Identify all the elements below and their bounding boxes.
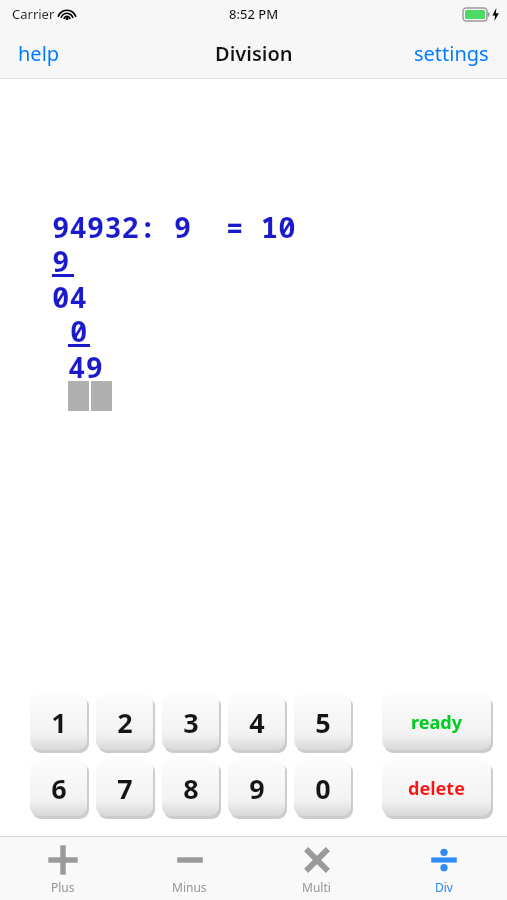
staticText: 6 [51,770,67,807]
button[interactable]: 4 [226,692,286,752]
staticText: 9 [249,770,265,807]
button[interactable]: ready [380,692,492,752]
button[interactable]: Minus [126,837,253,900]
staticText: 5 [315,704,331,741]
button[interactable]: 5 [292,692,352,752]
button[interactable]: delete [380,758,492,818]
button[interactable]: 6 [28,758,88,818]
staticText: 1 [51,704,67,741]
staticText: 2 [117,704,133,741]
button[interactable]: help [6,34,72,73]
staticText: 3 [183,704,199,741]
staticText: 8 [183,770,199,807]
staticText: 4 [249,704,265,741]
button[interactable]: 2 [94,692,154,752]
button[interactable]: 9 [226,758,286,818]
staticText: 94932: 9 = 10 [52,207,296,246]
staticText: 04 [52,277,87,316]
staticText: help [18,40,60,67]
staticText: 0 [315,770,331,807]
staticText: 9 [52,241,70,280]
staticText: Multi [302,879,331,895]
button[interactable]: 1 [28,692,88,752]
staticText: 8:52 PM [229,5,279,23]
staticText: Minus [172,879,207,895]
staticText: Carrier [12,5,55,23]
button[interactable]: 3 [160,692,220,752]
staticText: ready [411,710,462,735]
staticText: delete [408,776,465,801]
button[interactable]: Multi [253,837,380,900]
staticText: Division [215,40,293,67]
staticText: 49 [68,347,103,386]
staticText: 7 [117,770,133,807]
staticText: Plus [51,879,75,895]
staticText: settings [414,40,489,67]
button[interactable]: Div [380,837,507,900]
button[interactable]: 0 [292,758,352,818]
button[interactable]: 8 [160,758,220,818]
button[interactable]: Plus [0,837,126,900]
button[interactable]: 7 [94,758,154,818]
button[interactable]: settings [402,34,501,73]
staticText: 0 [70,311,88,350]
staticText: Div [435,879,453,895]
